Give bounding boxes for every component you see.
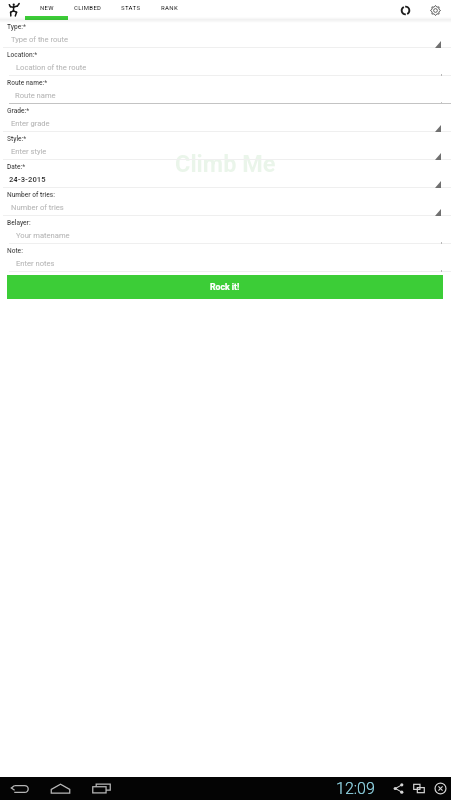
button[interactable]: Settings	[423, 0, 447, 21]
staticText: Type:*	[7, 23, 26, 31]
button[interactable]: Climb Me	[5, 0, 23, 20]
staticText: STATS	[121, 4, 141, 11]
button[interactable]: Recent apps	[85, 777, 117, 800]
staticText: Number of tries	[11, 203, 64, 212]
button[interactable]: Date:*	[0, 160, 451, 188]
button[interactable]: Share	[388, 777, 408, 800]
button[interactable]: Grade:*	[0, 104, 451, 132]
button[interactable]: RANK	[152, 0, 188, 21]
staticText: Enter grade	[11, 119, 50, 128]
staticText: Date:*	[7, 163, 26, 171]
staticText: Belayer:	[7, 219, 31, 227]
staticText: Number of tries:	[7, 191, 55, 199]
button[interactable]: Back	[4, 777, 36, 800]
staticText: Note:	[7, 247, 23, 255]
button[interactable]: Route name:*	[0, 76, 451, 104]
button[interactable]: Belayer:	[0, 216, 451, 244]
button[interactable]: Number of tries:	[0, 188, 451, 216]
button[interactable]: Style:*	[0, 132, 451, 160]
button[interactable]: Rock it!	[7, 275, 443, 299]
button[interactable]: Type:*	[0, 20, 451, 48]
staticText: 12:09	[336, 779, 375, 798]
staticText: Your matename	[16, 231, 70, 240]
button[interactable]: Screen mirror	[409, 777, 429, 800]
staticText: 24-3-2015	[9, 175, 46, 184]
staticText: CLIMBED	[74, 4, 102, 11]
button[interactable]: CLIMBED	[68, 0, 108, 21]
staticText: NEW	[40, 4, 54, 11]
staticText: Rock it!	[210, 282, 240, 292]
button[interactable]: Note:	[0, 244, 451, 272]
button[interactable]: Home	[44, 777, 76, 800]
button[interactable]: STATS	[113, 0, 149, 21]
staticText: Type of the route	[11, 35, 68, 44]
button[interactable]: Location:*	[0, 48, 451, 76]
staticText: Route name:*	[7, 79, 48, 87]
button[interactable]: NEW	[25, 0, 68, 21]
button[interactable]: Refresh	[393, 0, 417, 21]
staticText: RANK	[161, 4, 179, 11]
staticText: Grade:*	[7, 107, 30, 115]
staticText: Route name	[15, 91, 56, 100]
staticText: Enter notes	[16, 259, 55, 268]
staticText: Style:*	[7, 135, 27, 143]
staticText: Enter style	[11, 147, 47, 156]
button[interactable]: Close	[430, 777, 450, 800]
staticText: Climb Me	[175, 150, 276, 178]
staticText: Location:*	[7, 51, 38, 59]
staticText: Location of the route	[16, 63, 87, 72]
